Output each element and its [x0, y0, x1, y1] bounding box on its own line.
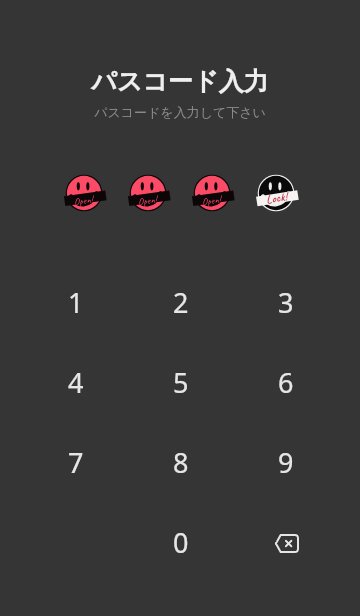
button[interactable]: 7 [23, 422, 128, 502]
staticText: 4 [68, 364, 84, 401]
button[interactable]: 4 [23, 342, 128, 422]
button[interactable]: Lock! [244, 174, 308, 212]
button[interactable]: Open! [180, 174, 244, 212]
staticText: 9 [278, 444, 294, 481]
staticText: 3 [278, 284, 294, 321]
button[interactable]: Backspace [233, 502, 338, 582]
staticText: 2 [173, 284, 189, 321]
staticText: 5 [173, 364, 189, 401]
staticText: Open! [137, 193, 158, 208]
staticText: パスコード入力 [91, 66, 269, 97]
button[interactable]: Open! [52, 174, 116, 212]
staticText: 0 [173, 524, 189, 561]
staticText: Open! [73, 193, 94, 208]
other: Backspace [264, 520, 308, 564]
staticText: Open! [201, 193, 222, 208]
button[interactable]: 8 [128, 422, 233, 502]
button[interactable]: 6 [233, 342, 338, 422]
button[interactable]: 1 [23, 262, 128, 342]
staticText: Lock! [265, 188, 288, 206]
staticText: パスコードを入力して下さい [94, 104, 266, 120]
staticText: 7 [68, 444, 84, 481]
button[interactable]: 5 [128, 342, 233, 422]
button[interactable]: 9 [233, 422, 338, 502]
button[interactable]: 2 [128, 262, 233, 342]
button[interactable]: 3 [233, 262, 338, 342]
button[interactable]: Open! [116, 174, 180, 212]
staticText: 1 [68, 284, 84, 321]
staticText: 8 [173, 444, 189, 481]
button[interactable]: 0 [128, 502, 233, 582]
staticText: 6 [278, 364, 294, 401]
